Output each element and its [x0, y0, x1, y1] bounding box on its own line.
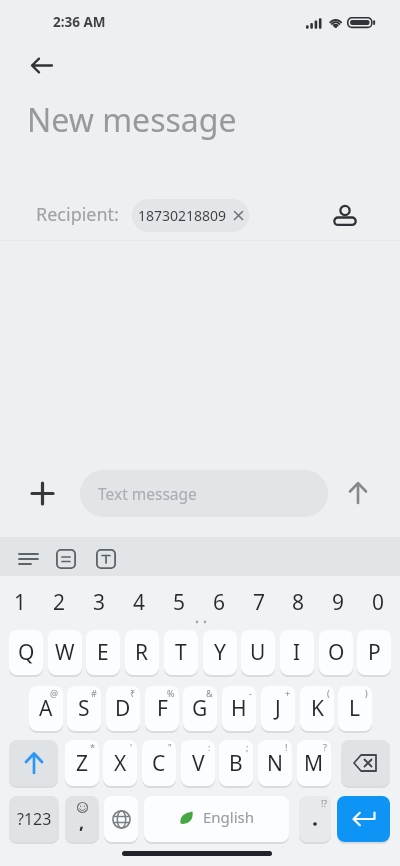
button[interactable] — [337, 796, 390, 842]
button[interactable]: " — [142, 740, 176, 786]
button[interactable]: 1 — [0, 588, 40, 616]
button[interactable]: ? — [297, 740, 331, 786]
button[interactable]: 6 — [199, 588, 239, 616]
staticText: 8 — [292, 588, 305, 616]
button[interactable]: Text message — [80, 470, 328, 517]
button[interactable]: U — [241, 630, 275, 675]
button[interactable]: ( — [300, 686, 334, 731]
button[interactable]: R — [125, 630, 159, 675]
button[interactable] — [22, 473, 62, 513]
staticText: 2:36 AM — [53, 13, 106, 31]
staticText: D — [115, 694, 131, 723]
button[interactable]: ' — [103, 740, 137, 786]
button[interactable]: % — [145, 686, 179, 731]
button[interactable]: : — [181, 740, 215, 786]
staticText: 6 — [213, 588, 226, 616]
button[interactable]: 8 — [278, 588, 318, 616]
staticText: ( — [327, 687, 330, 699]
button[interactable]: , — [65, 796, 99, 842]
staticText: !? — [321, 798, 327, 810]
staticText: English — [203, 807, 255, 827]
staticText: X — [114, 749, 127, 778]
button[interactable]: 9 — [318, 588, 358, 616]
staticText: Text message — [98, 483, 197, 504]
staticText: 3 — [93, 588, 106, 616]
staticText: & — [206, 687, 213, 699]
button[interactable] — [338, 473, 378, 513]
staticText: - — [249, 687, 252, 699]
button[interactable]: @ — [29, 686, 63, 731]
button[interactable]: Y — [203, 630, 237, 675]
staticText: ! — [285, 741, 288, 753]
button[interactable]: 0 — [358, 588, 398, 616]
staticText: % — [167, 687, 175, 699]
button[interactable]: ) — [338, 686, 372, 731]
staticText: Recipient: — [36, 202, 119, 227]
button[interactable] — [48, 543, 84, 575]
button[interactable]: * — [65, 740, 99, 786]
button[interactable]: ! — [258, 740, 292, 786]
staticText: V — [192, 749, 205, 778]
staticText: O — [328, 638, 345, 667]
button[interactable]: W — [48, 630, 82, 675]
staticText: U — [250, 638, 266, 667]
button[interactable]: O — [319, 630, 353, 675]
staticText: 18730218809 — [138, 206, 227, 225]
staticText: L — [349, 694, 361, 723]
button[interactable]: 5 — [159, 588, 199, 616]
staticText: " — [168, 741, 172, 753]
button[interactable]: Q — [9, 630, 43, 675]
button[interactable]: English — [144, 796, 289, 842]
button[interactable]: E — [86, 630, 120, 675]
staticText: A — [39, 694, 53, 723]
staticText: Z — [76, 749, 89, 778]
staticText: ; — [246, 741, 249, 753]
button[interactable]: & — [183, 686, 217, 731]
button[interactable] — [323, 193, 367, 237]
staticText: + — [285, 687, 291, 699]
button[interactable]: + — [261, 686, 295, 731]
button[interactable]: 2 — [39, 588, 79, 616]
button[interactable]: - — [222, 686, 256, 731]
staticText: 7 — [253, 588, 266, 616]
button[interactable]: 7 — [239, 588, 279, 616]
staticText: S — [78, 694, 90, 723]
staticText: W — [55, 638, 75, 667]
staticText: R — [135, 638, 149, 667]
button[interactable]: !? — [299, 796, 331, 842]
staticText: ) — [365, 687, 368, 699]
button[interactable]: 3 — [79, 588, 119, 616]
staticText: ? — [323, 741, 327, 753]
staticText: N — [267, 749, 283, 778]
staticText: 1 — [14, 588, 27, 616]
button[interactable]: ?123 — [9, 796, 59, 842]
button[interactable]: 18730218809 — [132, 199, 249, 232]
button[interactable] — [88, 543, 124, 575]
button[interactable]: I — [280, 630, 314, 675]
button[interactable] — [104, 796, 138, 842]
staticText: Y — [214, 638, 226, 667]
staticText: Q — [18, 638, 35, 667]
staticText: G — [192, 694, 208, 723]
button[interactable] — [10, 543, 46, 575]
button[interactable] — [341, 740, 390, 786]
staticText: T — [175, 638, 187, 667]
staticText: @ — [50, 687, 59, 699]
button[interactable] — [9, 740, 58, 786]
staticText: ₹ — [130, 687, 136, 699]
button[interactable]: 4 — [119, 588, 159, 616]
staticText: J — [275, 694, 281, 723]
staticText: H — [231, 694, 247, 723]
staticText: M — [304, 749, 324, 778]
button[interactable]: # — [67, 686, 101, 731]
button[interactable]: P — [357, 630, 391, 675]
staticText: ?123 — [17, 808, 52, 830]
button[interactable]: T — [164, 630, 198, 675]
staticText: 2 — [53, 588, 66, 616]
staticText: I — [293, 638, 301, 667]
staticText: F — [157, 694, 168, 723]
staticText: # — [91, 687, 97, 699]
button[interactable]: ; — [219, 740, 253, 786]
button[interactable]: ₹ — [106, 686, 140, 731]
button[interactable] — [24, 52, 60, 80]
